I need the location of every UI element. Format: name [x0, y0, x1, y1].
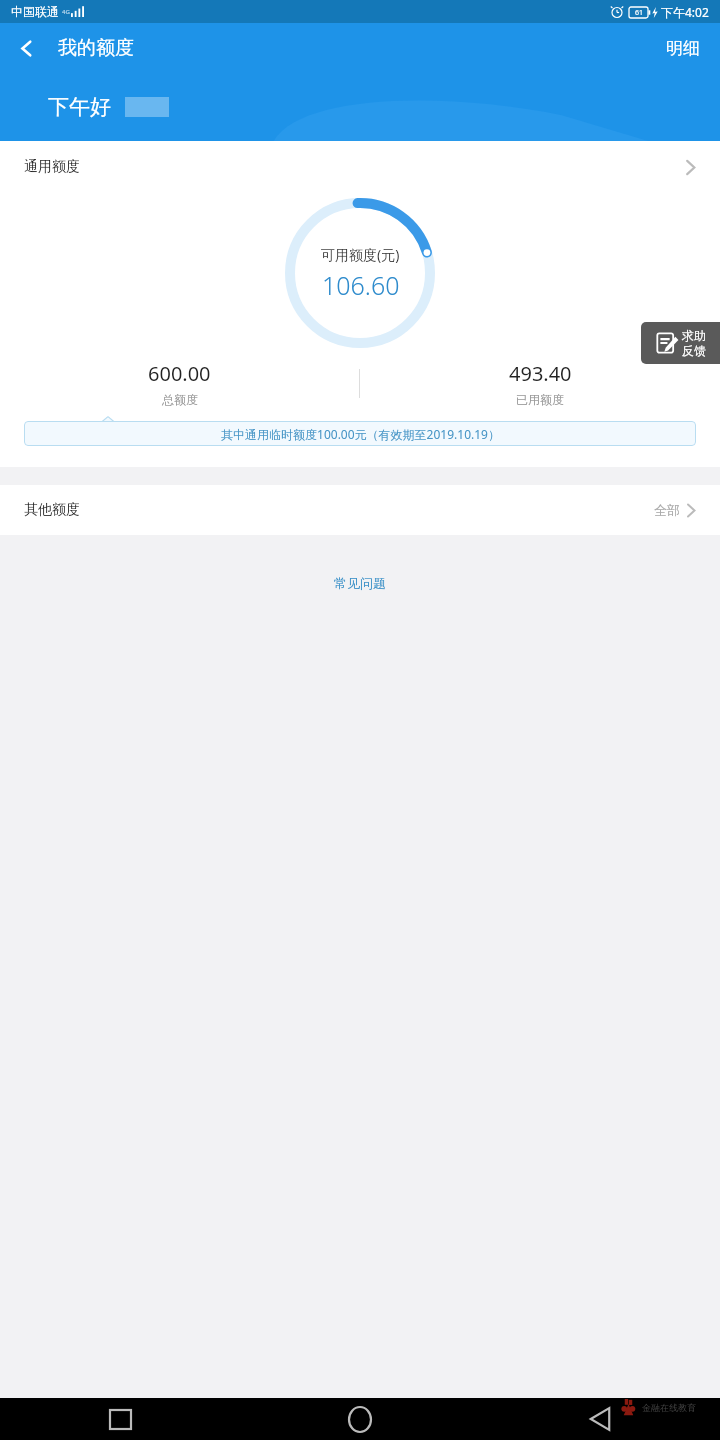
button[interactable]: 返回 — [0, 23, 52, 73]
button[interactable]: 最近任务 — [0, 1398, 240, 1440]
staticText: 可用额度(元) — [321, 245, 400, 264]
button[interactable]: 常见问题 — [0, 575, 720, 591]
staticText: 106.60 — [322, 268, 400, 302]
button[interactable]: 明细 — [646, 23, 720, 73]
button[interactable]: 主屏幕 — [240, 1398, 480, 1440]
staticText: 已用额度 — [516, 392, 564, 407]
staticText: 其他额度 — [24, 501, 80, 519]
staticText: 求助 — [682, 328, 706, 343]
staticText: 下午好 — [48, 94, 111, 120]
staticText: 其中通用临时额度100.00元（有效期至2019.10.19） — [221, 426, 500, 442]
staticText: 总额度 — [162, 392, 198, 407]
staticText: 明细 — [666, 38, 700, 59]
button[interactable]: 其他额度 — [0, 485, 720, 535]
staticText: 全部 — [654, 502, 680, 518]
staticText: 常见问题 — [334, 575, 386, 591]
staticText: 金融在线教育 — [642, 1402, 696, 1413]
button[interactable]: 求助 — [641, 322, 720, 364]
staticText: 下午4:02 — [661, 4, 709, 20]
staticText: 600.00 — [148, 360, 211, 387]
staticText: 4G — [62, 8, 70, 16]
staticText: 通用额度 — [24, 158, 80, 176]
staticText: 我的额度 — [58, 36, 134, 60]
staticText: 61 — [635, 8, 644, 18]
staticText: 中国联通 — [11, 4, 59, 19]
button[interactable]: 通用额度 — [0, 141, 720, 193]
staticText: 反馈 — [682, 343, 706, 358]
staticText: 493.40 — [509, 360, 572, 387]
button[interactable]: 返回 — [480, 1398, 720, 1440]
